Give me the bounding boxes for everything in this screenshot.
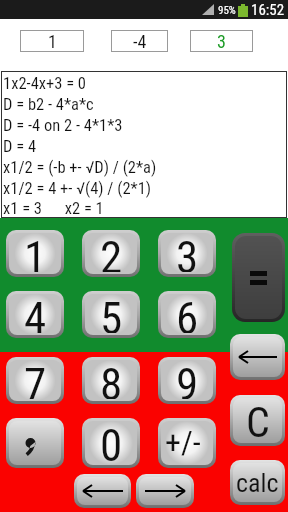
button[interactable] bbox=[6, 418, 64, 468]
staticText: 1 bbox=[48, 31, 57, 52]
staticText: 1x2-4x+3 = 0 bbox=[3, 74, 86, 93]
staticText: D = 4 bbox=[3, 137, 37, 156]
button[interactable]: 4 bbox=[6, 291, 64, 338]
staticText: 3 bbox=[176, 233, 199, 272]
button[interactable]: 9 bbox=[158, 357, 216, 404]
button[interactable]: 7 bbox=[6, 357, 64, 404]
staticText: 3 bbox=[217, 31, 226, 52]
staticText: 5 bbox=[100, 294, 123, 333]
staticText: calc bbox=[236, 468, 279, 498]
staticText: 4 bbox=[24, 294, 47, 333]
staticText: 6 bbox=[176, 294, 199, 333]
button[interactable]: calc bbox=[230, 460, 285, 505]
staticText: x1/2 = 4 +- √(4) / (2*1) bbox=[3, 179, 152, 198]
button[interactable]: 1 bbox=[20, 30, 84, 52]
staticText: x1/2 = (-b +- √D) / (2*a) bbox=[3, 158, 157, 177]
button[interactable]: 5 bbox=[82, 291, 140, 338]
button[interactable] bbox=[136, 474, 194, 508]
button[interactable] bbox=[74, 474, 131, 508]
button[interactable] bbox=[232, 233, 285, 322]
staticText: 95% bbox=[218, 4, 236, 17]
staticText: 1 bbox=[24, 233, 47, 272]
button[interactable]: 6 bbox=[158, 291, 216, 338]
staticText: C bbox=[246, 398, 270, 443]
button[interactable]: -4 bbox=[111, 30, 168, 52]
staticText: -4 bbox=[133, 31, 147, 52]
staticText: 2 bbox=[100, 233, 123, 272]
button[interactable]: 3 bbox=[158, 230, 216, 277]
staticText: D = -4 on 2 - 4*1*3 bbox=[3, 116, 123, 135]
staticText: 9 bbox=[176, 360, 199, 399]
button[interactable]: 1 bbox=[6, 230, 64, 277]
button[interactable]: +/- bbox=[158, 418, 216, 468]
button[interactable]: 3 bbox=[190, 30, 253, 52]
staticText: 7 bbox=[24, 360, 47, 399]
button[interactable]: 8 bbox=[82, 357, 140, 404]
staticText: x1 = 3 x2 = 1 bbox=[3, 199, 104, 218]
button[interactable]: C bbox=[230, 395, 285, 446]
staticText: D = b2 - 4*a*c bbox=[3, 95, 94, 114]
button[interactable] bbox=[230, 334, 285, 380]
staticText: +/- bbox=[165, 423, 201, 461]
staticText: 16:52 bbox=[251, 1, 285, 19]
staticText: 8 bbox=[100, 360, 123, 399]
staticText: 0 bbox=[100, 421, 123, 463]
button[interactable]: 2 bbox=[82, 230, 140, 277]
button[interactable]: 0 bbox=[82, 418, 140, 468]
